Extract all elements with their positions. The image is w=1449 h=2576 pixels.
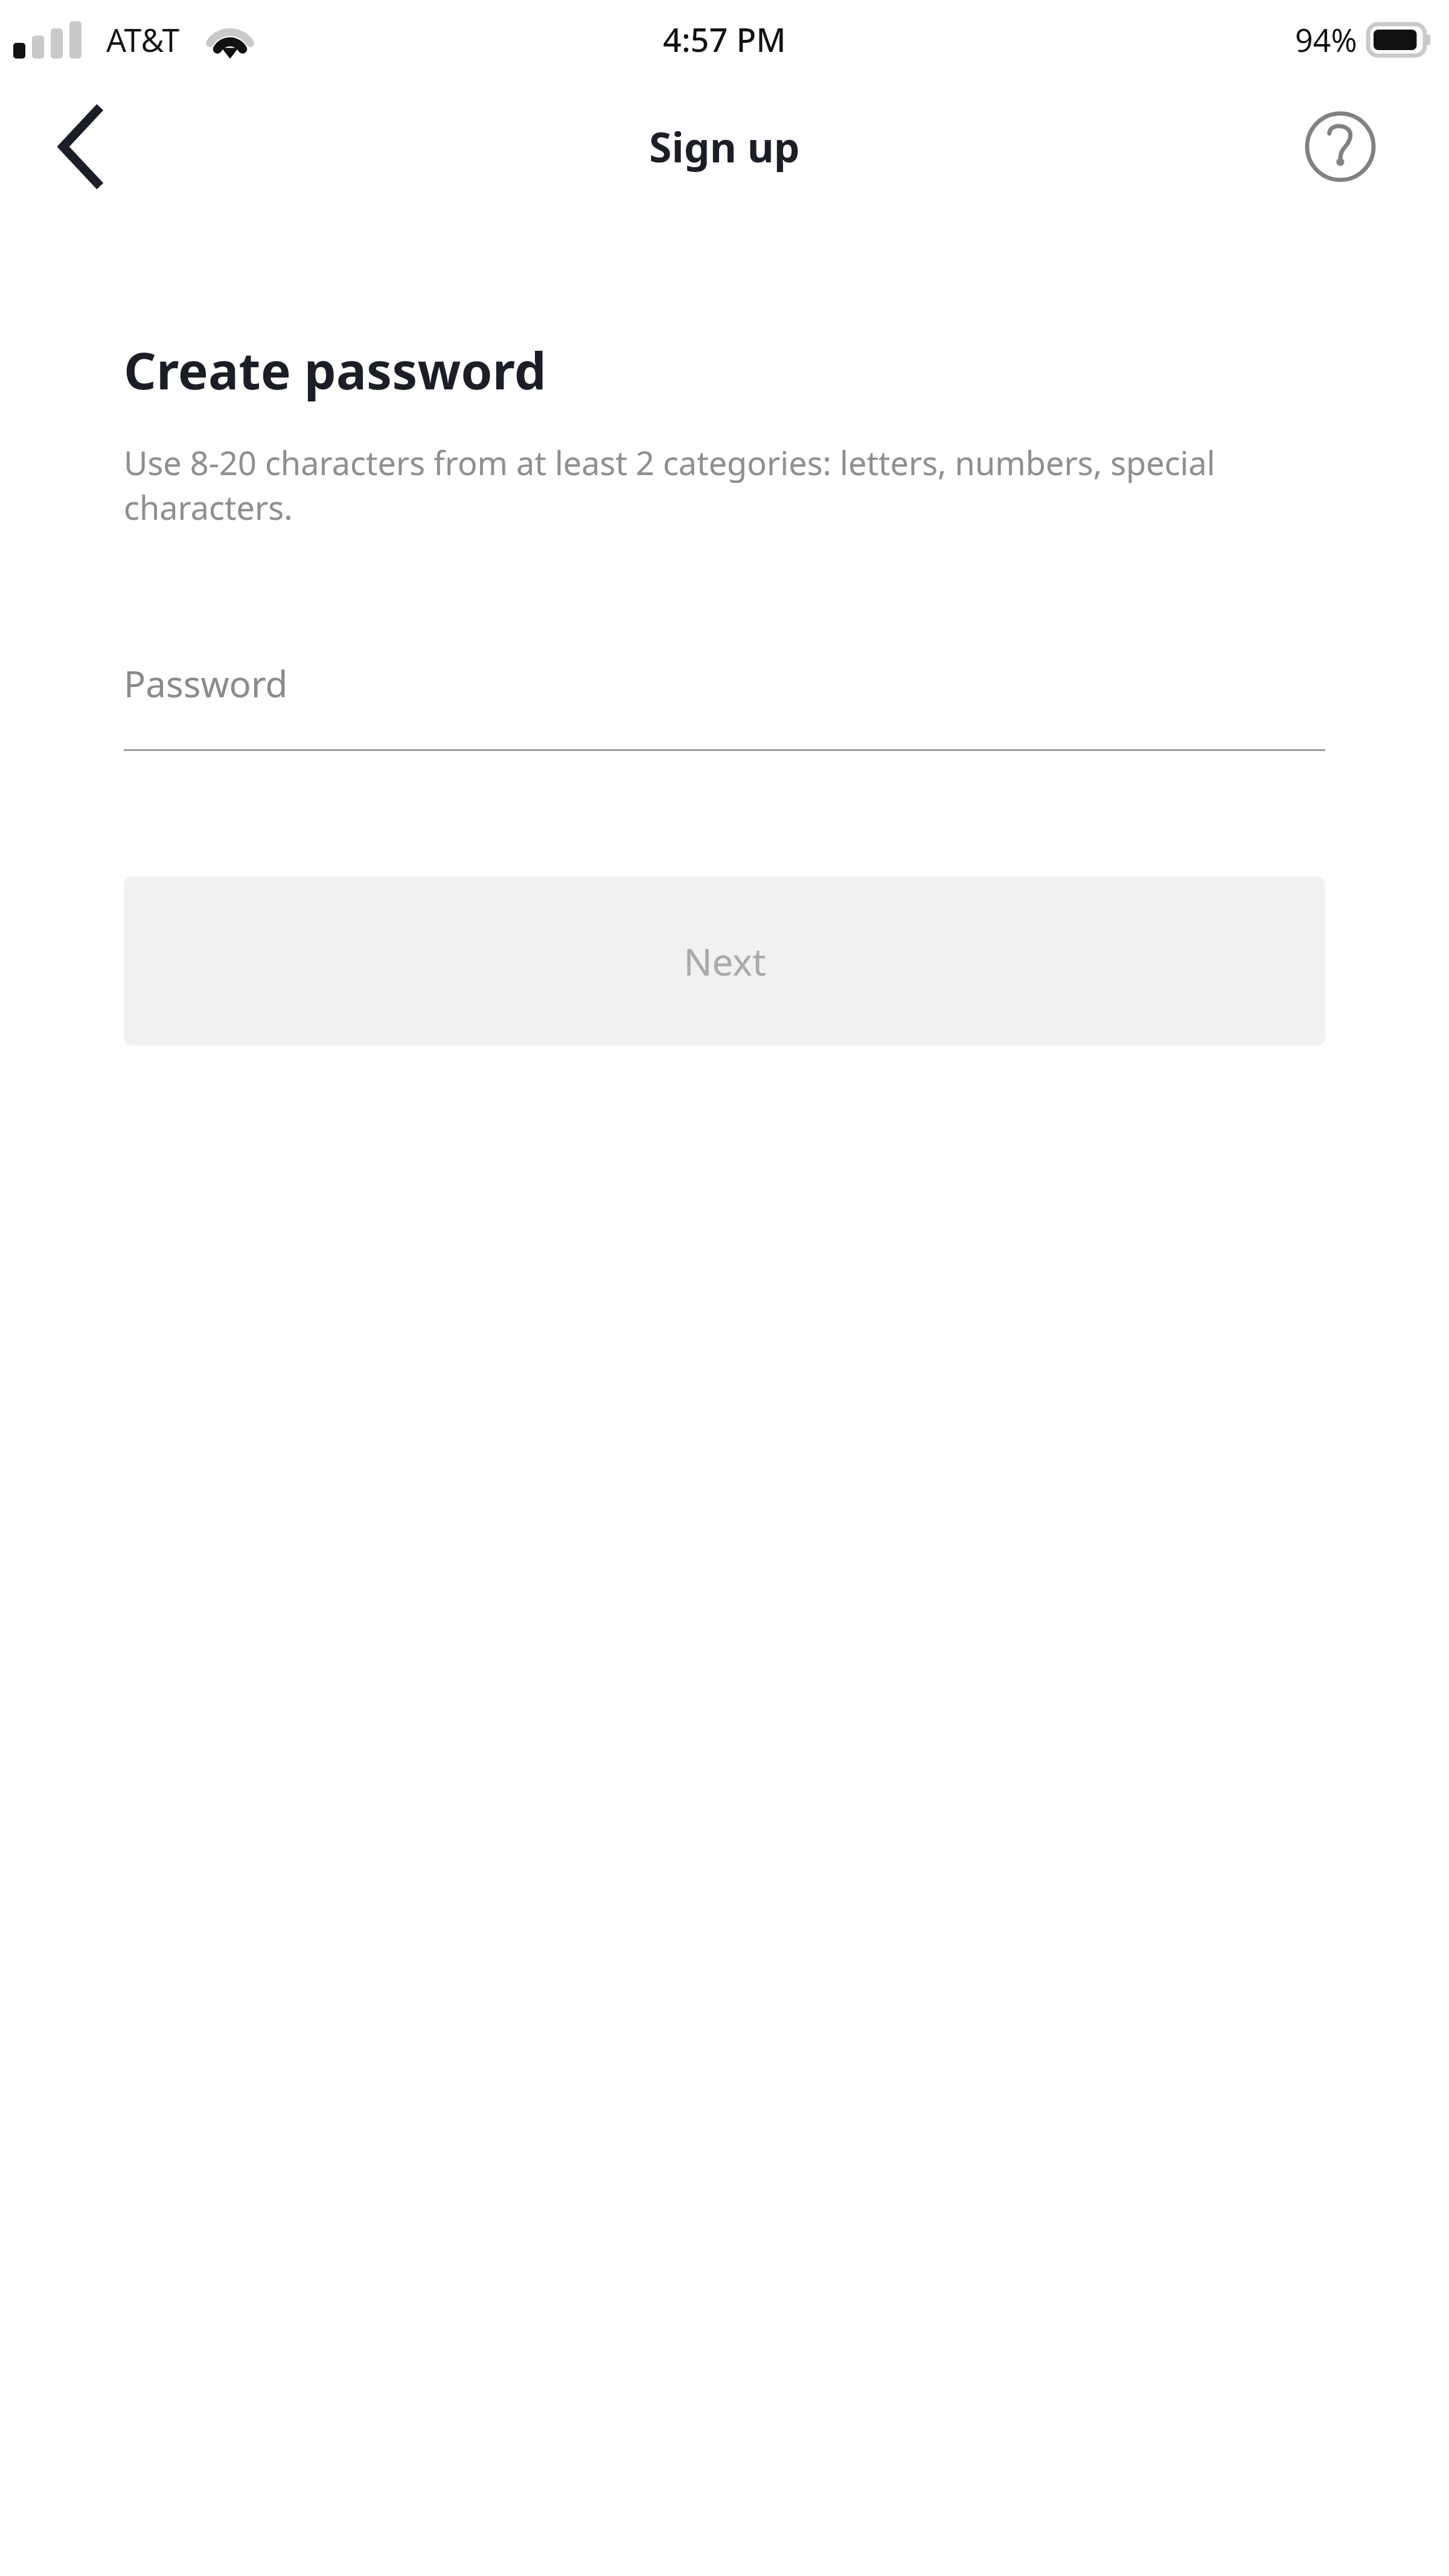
staticText: Create password xyxy=(124,335,546,404)
staticText: AT&T xyxy=(106,18,180,61)
staticText: 94% xyxy=(1295,18,1357,61)
button[interactable]: Back xyxy=(36,101,127,192)
staticText: 4:57 PM xyxy=(663,17,786,62)
staticText: Use 8-20 characters from at least 2 cate… xyxy=(124,440,1325,529)
staticText: Sign up xyxy=(649,118,800,174)
staticText: Next xyxy=(683,936,766,986)
staticText: Password xyxy=(124,659,288,708)
button[interactable]: Next xyxy=(124,877,1325,1046)
button[interactable]: Help xyxy=(1298,104,1383,189)
button[interactable]: Password xyxy=(124,648,1325,751)
